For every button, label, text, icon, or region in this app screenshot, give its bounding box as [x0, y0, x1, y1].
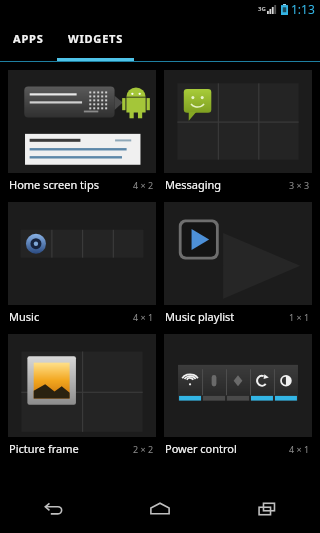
staticText: 3G — [258, 5, 266, 13]
staticText: Home screen tips — [9, 177, 99, 192]
staticText: Music — [9, 309, 40, 324]
button[interactable]: Recent apps — [213, 485, 320, 533]
button[interactable]: Back — [0, 485, 106, 533]
staticText: 4 × 1 — [133, 311, 154, 323]
button[interactable]: Picture frame — [8, 334, 156, 456]
button[interactable]: Power control — [164, 334, 312, 456]
staticText: 2 × 2 — [133, 443, 154, 455]
staticText: 1 × 1 — [289, 311, 310, 323]
staticText: Music playlist — [165, 309, 235, 324]
button[interactable]: Home — [106, 485, 213, 533]
staticText: Power control — [165, 441, 237, 456]
button[interactable]: Messaging — [164, 70, 312, 192]
button[interactable]: Home screen tips — [8, 70, 156, 192]
staticText: WIDGETS — [68, 31, 124, 46]
staticText: 4 × 1 — [289, 443, 310, 455]
button[interactable]: Music — [8, 202, 156, 324]
button[interactable]: Music playlist — [164, 202, 312, 324]
staticText: 4 × 2 — [133, 179, 154, 191]
button[interactable]: APPS — [0, 18, 57, 58]
staticText: 3 × 3 — [289, 179, 310, 191]
button[interactable]: WIDGETS — [57, 18, 134, 58]
staticText: Picture frame — [9, 441, 79, 456]
staticText: 1:13 — [291, 1, 315, 17]
staticText: APPS — [13, 31, 44, 46]
staticText: Messaging — [165, 177, 222, 192]
